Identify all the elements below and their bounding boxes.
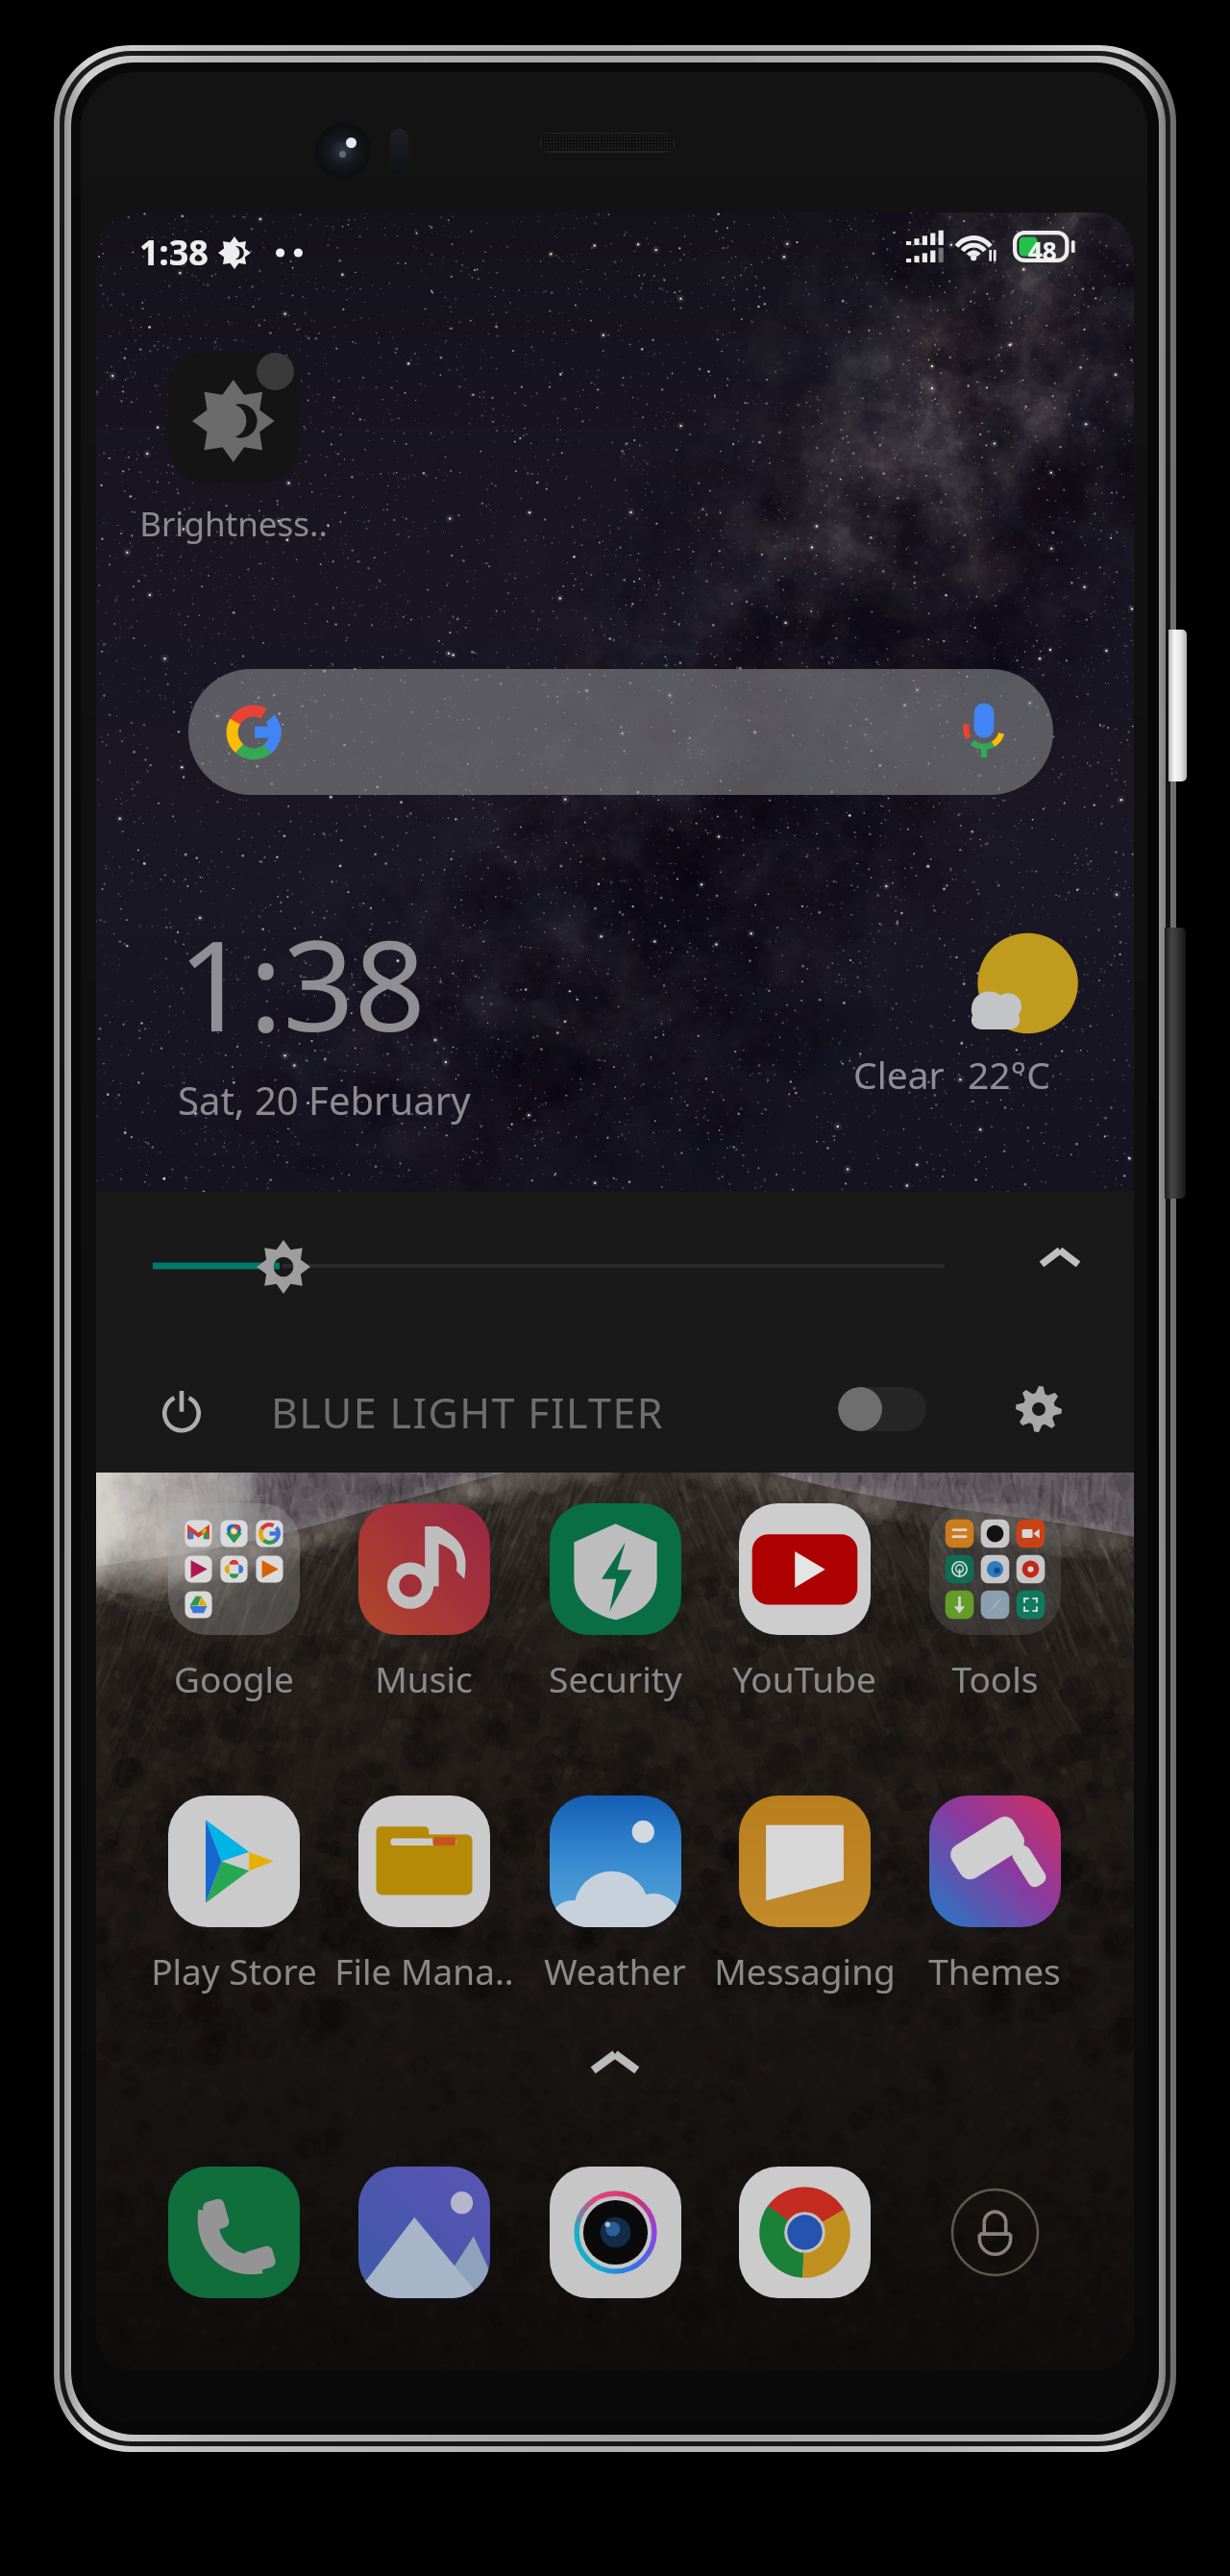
button[interactable]: YouTube <box>712 1492 897 1713</box>
staticText: Weather <box>544 1946 686 1994</box>
button[interactable]: Security <box>523 1492 707 1713</box>
button[interactable]: Themes <box>902 1784 1087 2005</box>
staticText: Google <box>174 1654 294 1702</box>
button[interactable]: Expand panel <box>1033 1234 1087 1288</box>
button[interactable]: Weather <box>523 1784 707 2005</box>
button[interactable]: Brightness app <box>123 336 344 553</box>
staticText: Themes <box>928 1946 1061 1994</box>
other: Brightness app <box>168 352 300 483</box>
button[interactable]: Phone <box>151 2149 316 2315</box>
staticText: Music <box>375 1654 473 1702</box>
button[interactable]: File Mana.. <box>332 1784 516 2005</box>
staticText: BLUE LIGHT FILTER <box>271 1384 664 1441</box>
staticText: Messaging <box>714 1946 896 1994</box>
staticText: Tools <box>951 1654 1039 1702</box>
staticText: Sat, 20 February <box>178 1074 471 1126</box>
button[interactable]: Camera <box>532 2149 698 2315</box>
button[interactable]: Gallery <box>341 2149 506 2315</box>
button[interactable]: Google <box>141 1492 326 1713</box>
button[interactable]: Google search <box>188 669 1053 795</box>
button[interactable]: Screen lock <box>912 2149 1077 2315</box>
button[interactable]: Settings <box>1016 1386 1062 1432</box>
button[interactable]: Chrome <box>722 2149 887 2315</box>
button[interactable]: Messaging <box>712 1784 897 2005</box>
staticText: File Mana.. <box>334 1946 514 1994</box>
staticText: Play Store <box>151 1946 317 1994</box>
staticText: 48 <box>1028 234 1057 265</box>
staticText: Security <box>549 1654 682 1702</box>
staticText: YouTube <box>732 1654 876 1702</box>
staticText: 1:38 <box>178 898 426 1068</box>
button[interactable]: Tools <box>902 1492 1087 1713</box>
button[interactable]: Music <box>332 1492 516 1713</box>
staticText: 1:38 <box>139 229 209 276</box>
button[interactable]: Toggle blue light filter <box>838 1387 926 1431</box>
staticText: Clear <box>853 1049 945 1100</box>
staticText: Brightness.. <box>139 501 328 547</box>
button[interactable]: Play Store <box>141 1784 326 2005</box>
button[interactable]: Power <box>158 1386 206 1434</box>
staticText: 22°C <box>968 1049 1050 1100</box>
button[interactable]: Open app drawer <box>586 2037 644 2094</box>
